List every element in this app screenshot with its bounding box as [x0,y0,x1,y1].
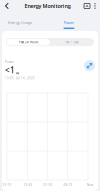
button[interactable]: Devices [82,0,91,11]
button[interactable]: Past 24 Hours [7,39,50,45]
staticText: Past 24 Hours [19,40,38,44]
staticText: Power [63,20,74,25]
button[interactable]: More options [91,0,98,11]
staticText: Power [5,60,14,64]
staticText: Energy Usage [8,20,32,25]
button[interactable]: Energy Usage [0,12,40,31]
staticText: <1 [5,65,15,75]
button[interactable]: Power [49,12,89,31]
staticText: 13:05 Jul 14, 2025 [5,76,35,80]
staticText: 01:50 [43,183,52,187]
staticText: 08:10 [63,183,72,187]
button[interactable]: Back [1,0,12,11]
staticText: w [16,70,19,75]
staticText: Past 7 Days [65,40,79,44]
staticText: Now [87,183,93,187]
staticText: Energy Monitoring [24,2,70,10]
staticText: 13:10 [2,183,11,187]
staticText: 19:30 [23,183,32,187]
button[interactable]: Past 7 Days [50,39,93,45]
button[interactable]: Expand chart [84,60,95,71]
